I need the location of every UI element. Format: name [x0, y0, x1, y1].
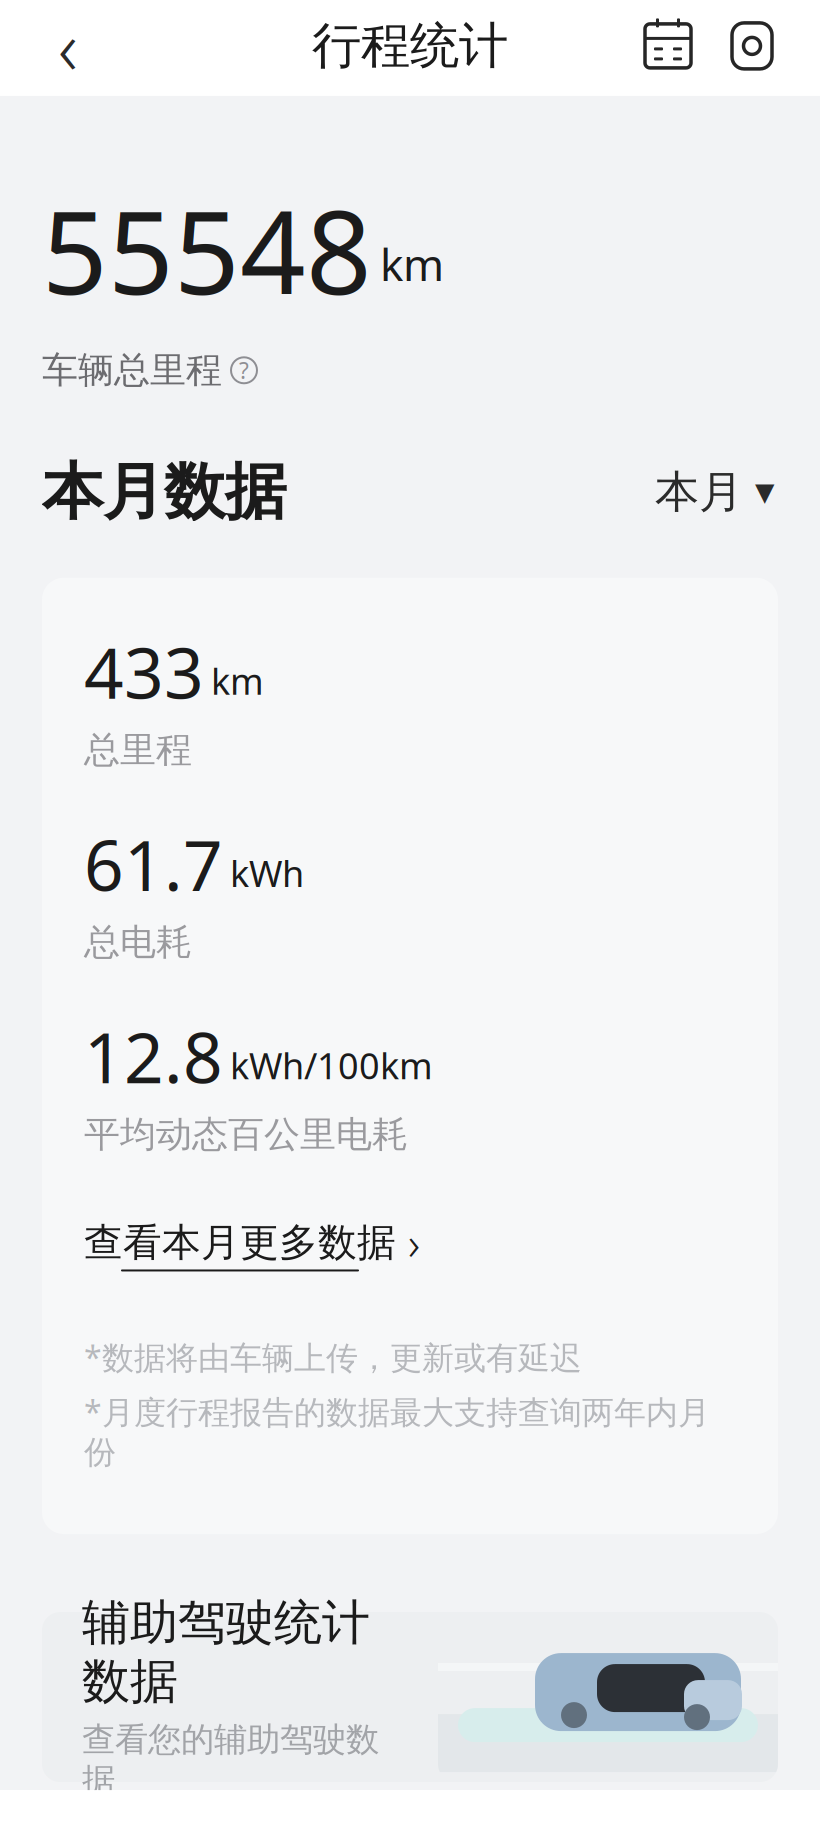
button[interactable]: 选择日期 — [626, 4, 710, 88]
staticText: 行程统计 — [312, 16, 508, 76]
staticText: 总里程 — [84, 728, 192, 772]
staticText: › — [408, 1213, 420, 1273]
staticText: 辅助驾驶统计数据 — [82, 1593, 370, 1711]
staticText: *月度行程报告的数据最大支持查询两年内月份 — [84, 1390, 710, 1472]
button[interactable]: 辅助驾驶统计数据 — [42, 1612, 778, 1782]
button[interactable]: 返回 — [26, 4, 110, 88]
staticText: 查看本月更多数据 — [84, 1219, 396, 1266]
button[interactable]: 车辆总里程 — [42, 326, 778, 392]
staticText: ‹ — [58, 0, 78, 95]
staticText: 查看您的辅助驾驶数据 — [82, 1719, 379, 1801]
staticText: 平均动态百公里电耗 — [84, 1112, 408, 1157]
staticText: ? — [239, 355, 249, 385]
staticText: 61.7 — [84, 818, 223, 910]
staticText: km — [211, 657, 264, 705]
staticText: ▼ — [755, 478, 774, 506]
staticText: kWh — [230, 849, 304, 897]
staticText: *数据将由车辆上传，更新或有延迟 — [84, 1336, 582, 1378]
staticText: kWh/100km — [230, 1041, 433, 1089]
button[interactable]: 本月 — [651, 457, 778, 527]
staticText: 总电耗 — [84, 920, 192, 964]
staticText: 车辆总里程 — [42, 348, 222, 392]
staticText: 12.8 — [84, 1010, 223, 1102]
staticText: km — [380, 235, 444, 293]
staticText: 433 — [84, 626, 204, 718]
staticText: 本月 — [655, 465, 743, 519]
staticText: 本月数据 — [42, 454, 286, 530]
button[interactable]: 查看本月更多数据 — [42, 1157, 778, 1278]
staticText: 55548 — [42, 174, 372, 326]
button[interactable]: 设置 — [710, 4, 794, 88]
